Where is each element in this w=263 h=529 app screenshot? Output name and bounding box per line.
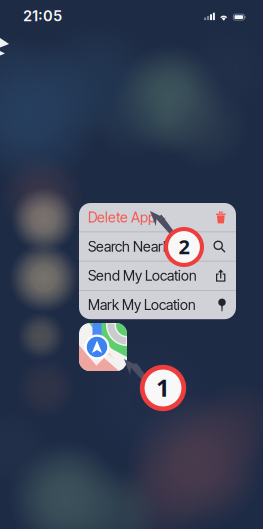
staticText: 2 (178, 233, 189, 260)
button[interactable]: Mark My Location (79, 291, 236, 319)
staticText: Search Nearby (88, 238, 178, 255)
staticText: Delete App (88, 209, 156, 226)
staticText: 1 (156, 372, 170, 403)
button[interactable]: Send My Location (79, 261, 236, 290)
button[interactable]: Search Nearby (79, 232, 236, 261)
staticText: Send My Location (88, 267, 197, 284)
staticText: 21:05 (23, 7, 62, 25)
button[interactable]: Delete App (79, 203, 236, 232)
staticText: Mark My Location (88, 296, 196, 313)
